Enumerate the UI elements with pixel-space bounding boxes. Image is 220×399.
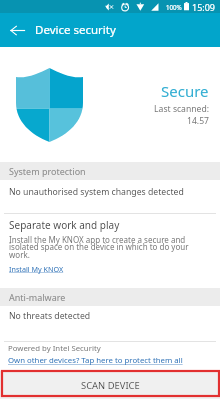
staticText: No threats detected (9, 310, 91, 322)
staticText: Separate work and play (9, 218, 120, 232)
staticText: Powered by Intel Security (8, 343, 101, 354)
button[interactable]: Back (0, 13, 35, 47)
staticText: Device security (35, 22, 116, 38)
staticText: 15:09 (192, 1, 216, 13)
staticText: No unauthorised system changes detected (9, 186, 184, 198)
staticText: Last scanned: (154, 103, 209, 115)
button[interactable]: Separate work and play (0, 214, 220, 288)
button[interactable]: Own other devices? Tap here to protect t… (8, 355, 183, 366)
staticText: Anti-malware (9, 291, 66, 303)
staticText: 14.57 (187, 115, 209, 127)
button[interactable]: No threats detected (0, 306, 220, 341)
staticText: 100% (166, 3, 182, 11)
staticText: System protection (9, 165, 86, 177)
button[interactable]: No unauthorised system changes detected (0, 180, 220, 213)
button[interactable]: SCAN DEVICE (0, 371, 220, 399)
staticText: SCAN DEVICE (81, 379, 140, 392)
staticText: Secure (161, 81, 209, 101)
button[interactable]: Install My KNOX (9, 264, 64, 274)
staticText: Install the My KNOX app to create a secu… (9, 234, 195, 261)
